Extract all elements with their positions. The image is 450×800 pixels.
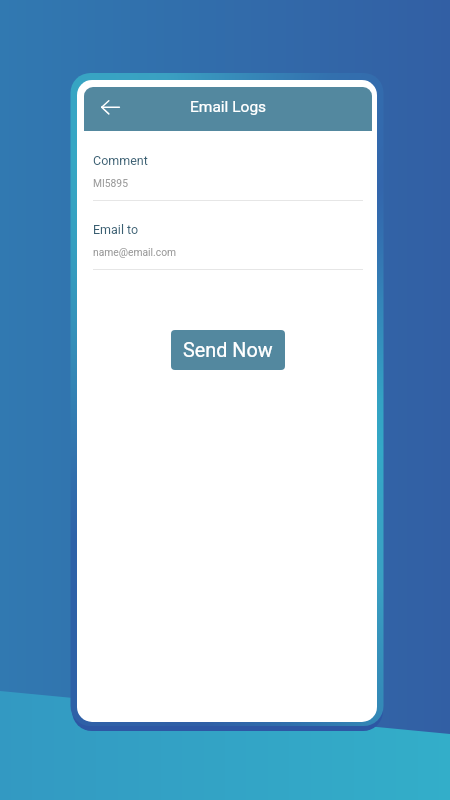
- button[interactable]: Send Now: [171, 330, 285, 370]
- button[interactable]: Back: [96, 87, 126, 131]
- staticText: Email to: [93, 222, 139, 237]
- button[interactable]: Comment: [93, 147, 363, 201]
- staticText: name@email.com: [93, 246, 177, 258]
- staticText: MI5895: [93, 177, 128, 189]
- staticText: Send Now: [183, 339, 273, 362]
- staticText: Email Logs: [190, 98, 267, 116]
- button[interactable]: Email to: [93, 216, 363, 270]
- staticText: Comment: [93, 153, 148, 168]
